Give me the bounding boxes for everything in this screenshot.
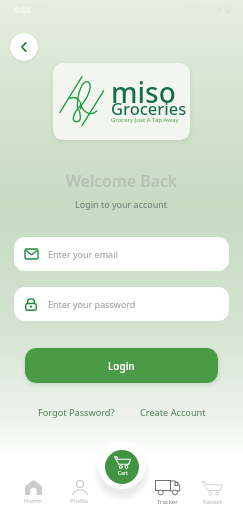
staticText: Home	[24, 497, 42, 505]
button[interactable]: Tracker	[146, 480, 188, 507]
button[interactable]: Create Account	[138, 404, 208, 421]
button[interactable]: Profile	[58, 480, 100, 507]
staticText: Enter your email	[48, 248, 118, 260]
button[interactable]: Enter your email	[14, 237, 229, 271]
staticText: miso	[111, 73, 176, 111]
button[interactable]: Enter your password	[14, 287, 229, 321]
staticText: Groceries	[111, 97, 187, 119]
button[interactable]: Back	[10, 33, 38, 61]
staticText: Cart	[118, 470, 128, 477]
staticText: Grocery Just A Tap Away	[111, 116, 179, 124]
staticText: Tracker	[157, 498, 178, 506]
staticText: Profile	[70, 497, 89, 505]
staticText: Login to your account	[75, 198, 168, 210]
staticText: Forgot Password?	[38, 406, 115, 419]
button[interactable]: Cart	[105, 450, 139, 484]
button[interactable]: Basket	[191, 480, 233, 507]
staticText: Welcome Back	[66, 170, 177, 192]
staticText: Basket	[203, 498, 222, 506]
staticText: Enter your password	[48, 298, 136, 310]
button[interactable]: Forgot Password?	[36, 404, 117, 421]
staticText: Create Account	[140, 406, 206, 419]
staticText: 9:23	[14, 4, 30, 15]
button[interactable]: Login	[25, 348, 218, 383]
button[interactable]: Home	[12, 480, 54, 507]
staticText: Login	[108, 359, 135, 373]
